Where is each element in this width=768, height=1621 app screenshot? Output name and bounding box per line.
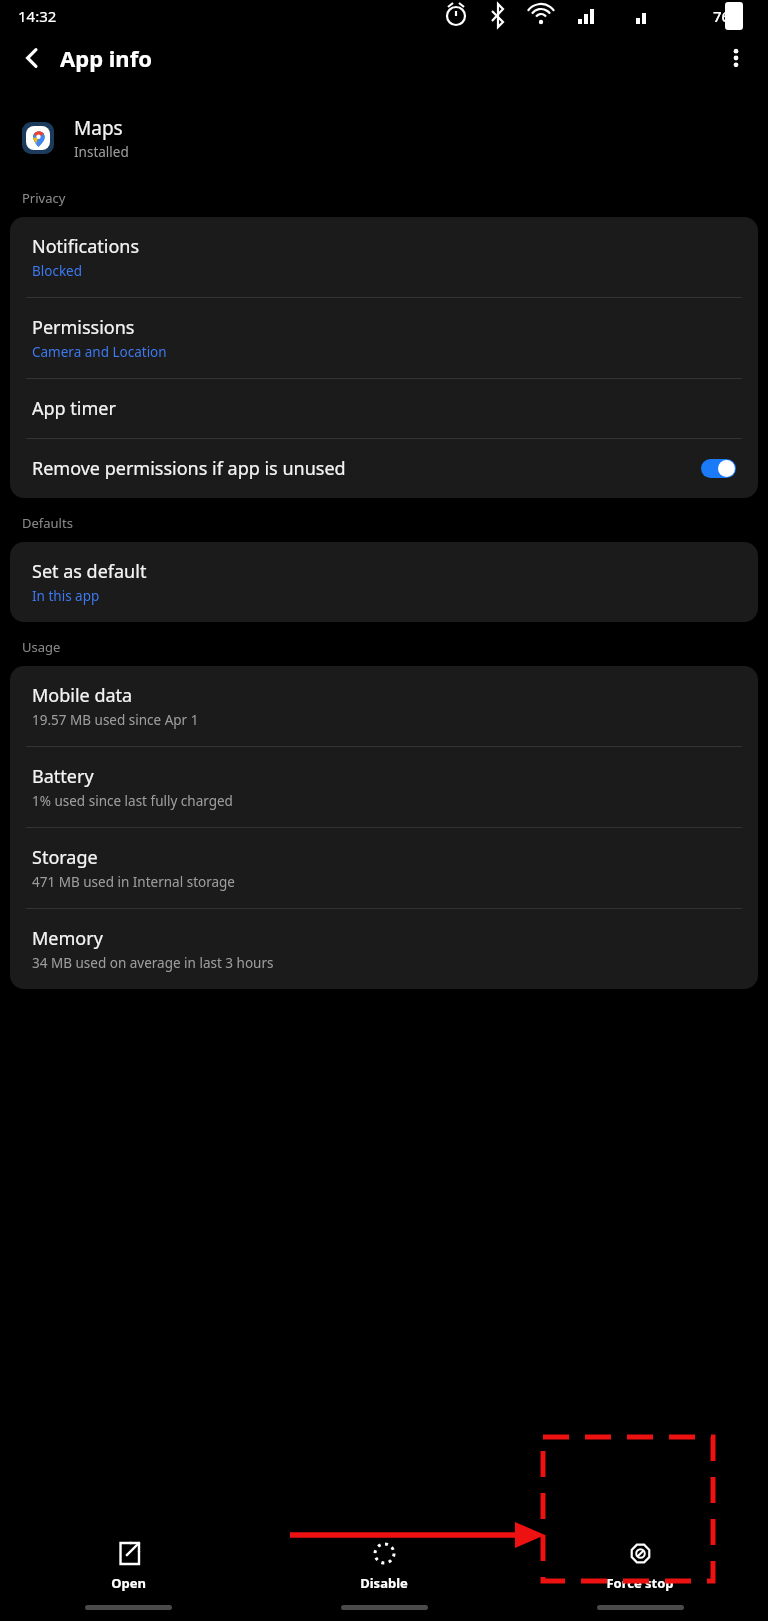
button[interactable]: Storage: [10, 828, 758, 908]
staticText: Permissions: [32, 315, 135, 340]
button[interactable]: Back: [10, 36, 54, 80]
button[interactable]: Set as default: [10, 542, 758, 622]
staticText: 471 MB used in Internal storage: [32, 873, 235, 891]
staticText: Blocked: [32, 262, 83, 280]
button[interactable]: Permissions: [10, 298, 758, 378]
staticText: Battery: [32, 764, 94, 789]
button[interactable]: Remove permissions if app is unused: [10, 439, 758, 498]
staticText: App timer: [32, 396, 116, 421]
button[interactable]: Open: [0, 1527, 256, 1593]
staticText: Installed: [74, 143, 129, 161]
button[interactable]: Mobile data: [10, 666, 758, 746]
button[interactable]: Force stop: [512, 1527, 768, 1593]
staticText: Force stop: [606, 1574, 674, 1592]
staticText: 76%: [713, 6, 743, 26]
staticText: Set as default: [32, 559, 147, 584]
staticText: 14:32: [18, 6, 57, 26]
button[interactable]: App timer: [10, 379, 758, 438]
staticText: 19.57 MB used since Apr 1: [32, 711, 199, 729]
button[interactable]: Memory: [10, 909, 758, 989]
staticText: Usage: [22, 638, 61, 656]
staticText: 34 MB used on average in last 3 hours: [32, 954, 274, 972]
staticText: Privacy: [22, 189, 66, 207]
button[interactable]: Disable: [256, 1527, 512, 1593]
button[interactable]: Remove permissions toggle: [701, 459, 736, 478]
staticText: In this app: [32, 587, 100, 605]
button[interactable]: Notifications: [10, 217, 758, 297]
staticText: App info: [60, 43, 152, 73]
staticText: Memory: [32, 926, 103, 951]
staticText: Disable: [360, 1574, 408, 1592]
button[interactable]: More options: [714, 36, 758, 80]
staticText: Storage: [32, 845, 98, 870]
staticText: 1% used since last fully charged: [32, 792, 233, 810]
button[interactable]: Battery: [10, 747, 758, 827]
staticText: Open: [111, 1574, 146, 1592]
staticText: Camera and Location: [32, 343, 167, 361]
staticText: Remove permissions if app is unused: [32, 456, 346, 481]
staticText: Notifications: [32, 234, 140, 259]
staticText: Defaults: [22, 514, 73, 532]
staticText: Mobile data: [32, 683, 133, 708]
staticText: Maps: [74, 115, 123, 141]
